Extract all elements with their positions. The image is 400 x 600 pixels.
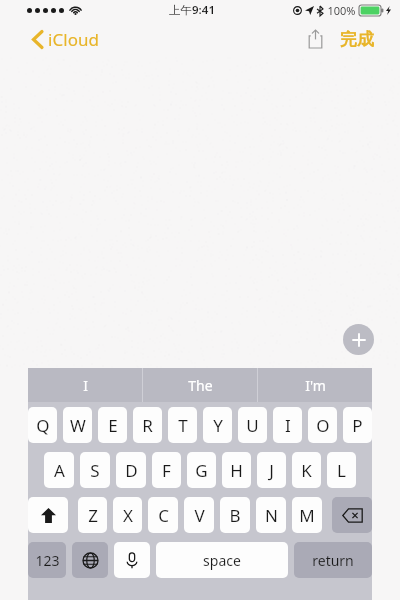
button[interactable]: Shift [28, 497, 68, 533]
button[interactable]: A [44, 452, 74, 488]
button[interactable]: M [292, 497, 322, 533]
button[interactable]: B [220, 497, 250, 533]
button[interactable]: Z [78, 497, 107, 533]
staticText: R [142, 414, 153, 437]
staticText: Y [213, 414, 223, 437]
staticText: X [123, 504, 133, 527]
staticText: H [230, 459, 243, 482]
staticText: iCloud [48, 28, 99, 51]
button[interactable]: Change keyboard [72, 542, 108, 578]
staticText: B [229, 504, 241, 527]
button[interactable]: space [156, 542, 288, 578]
button[interactable]: N [256, 497, 286, 533]
button[interactable]: return [294, 542, 372, 578]
staticText: Q [36, 414, 50, 437]
button[interactable]: Delete [332, 497, 372, 533]
button[interactable]: 完成 [340, 29, 374, 50]
staticText: O [316, 414, 330, 437]
staticText: G [195, 459, 208, 482]
button[interactable]: V [184, 497, 214, 533]
button[interactable]: J [257, 452, 286, 488]
staticText: K [301, 459, 312, 482]
button[interactable]: H [222, 452, 251, 488]
staticText: E [108, 414, 118, 437]
button[interactable]: K [292, 452, 321, 488]
button[interactable]: Dictate [114, 542, 150, 578]
button[interactable]: C [148, 497, 178, 533]
staticText: return [312, 551, 354, 570]
staticText: S [90, 459, 100, 482]
button[interactable]: R [133, 407, 162, 443]
staticText: The [188, 376, 213, 395]
button[interactable]: W [63, 407, 92, 443]
staticText: I [83, 376, 88, 395]
staticText: M [299, 504, 315, 527]
staticText: T [178, 414, 188, 437]
button[interactable]: I'm [258, 368, 372, 402]
button[interactable]: Add [343, 324, 374, 355]
button[interactable]: X [113, 497, 142, 533]
button[interactable]: O [308, 407, 337, 443]
button[interactable]: I [28, 368, 142, 402]
staticText: W [70, 414, 86, 437]
staticText: Z [88, 504, 98, 527]
staticText: 上午9:41 [169, 2, 215, 18]
staticText: L [337, 459, 346, 482]
button[interactable]: L [327, 452, 356, 488]
button[interactable]: U [238, 407, 267, 443]
staticText: J [269, 459, 274, 482]
button[interactable]: 123 [28, 542, 66, 578]
button[interactable]: I [273, 407, 302, 443]
staticText: P [352, 414, 363, 437]
staticText: I'm [305, 376, 326, 395]
staticText: N [265, 504, 278, 527]
staticText: I [285, 414, 291, 437]
button[interactable]: Y [203, 407, 232, 443]
staticText: space [203, 551, 241, 570]
button[interactable]: P [343, 407, 372, 443]
button[interactable]: Share [302, 26, 328, 52]
staticText: F [162, 459, 171, 482]
staticText: V [194, 504, 205, 527]
button[interactable]: iCloud [32, 28, 99, 51]
staticText: 123 [35, 551, 60, 570]
button[interactable]: Q [28, 407, 57, 443]
button[interactable]: The [143, 368, 257, 402]
button[interactable]: E [98, 407, 127, 443]
button[interactable]: S [80, 452, 110, 488]
button[interactable]: F [152, 452, 181, 488]
staticText: 完成 [340, 29, 374, 50]
staticText: C [158, 504, 169, 527]
button[interactable]: D [116, 452, 146, 488]
staticText: U [246, 414, 259, 437]
button[interactable]: T [168, 407, 197, 443]
staticText: 100% [327, 3, 356, 18]
staticText: A [54, 459, 65, 482]
button[interactable]: G [187, 452, 216, 488]
staticText: D [125, 459, 138, 482]
